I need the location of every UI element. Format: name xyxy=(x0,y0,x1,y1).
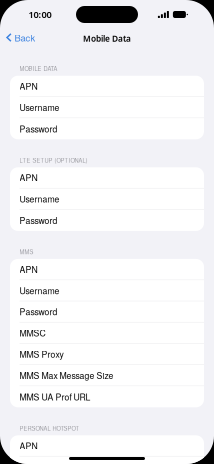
button[interactable]: APN xyxy=(10,259,204,280)
button[interactable]: APN xyxy=(10,435,204,456)
button[interactable]: MMS UA Prof URL xyxy=(10,386,204,407)
staticText: 10:00 xyxy=(28,8,51,21)
button[interactable]: Password xyxy=(10,301,204,322)
staticText: Username xyxy=(19,461,59,464)
staticText: APN xyxy=(19,171,37,184)
staticText: Back xyxy=(14,31,35,44)
staticText: Password xyxy=(19,214,57,226)
staticText: APN xyxy=(19,439,37,452)
staticText: MMSC xyxy=(19,327,45,339)
button[interactable]: Back xyxy=(0,29,35,48)
staticText: Password xyxy=(19,305,57,318)
button[interactable]: APN xyxy=(10,76,204,97)
button[interactable]: MMS Proxy xyxy=(10,344,204,365)
button[interactable]: APN xyxy=(10,167,204,188)
button[interactable]: MMS Max Message Size xyxy=(10,365,204,386)
staticText: LTE SETUP (OPTIONAL) xyxy=(19,156,87,164)
staticText: MMS xyxy=(19,248,33,256)
staticText: Password xyxy=(19,122,57,135)
button[interactable]: Username xyxy=(10,280,204,301)
staticText: Username xyxy=(19,193,59,205)
staticText: MOBILE DATA xyxy=(19,64,57,73)
button[interactable]: MMSC xyxy=(10,322,204,344)
button[interactable]: Username xyxy=(10,188,204,210)
staticText: PERSONAL HOTSPOT xyxy=(19,424,79,432)
button[interactable]: Password xyxy=(10,210,204,231)
staticText: APN xyxy=(19,263,37,275)
staticText: MMS Proxy xyxy=(19,348,63,360)
staticText: APN xyxy=(19,80,37,92)
staticText: Username xyxy=(19,101,59,113)
button[interactable]: Password xyxy=(10,118,204,139)
button[interactable]: Username xyxy=(10,97,204,118)
staticText: MMS Max Message Size xyxy=(19,369,113,381)
staticText: Mobile Data xyxy=(83,33,131,44)
staticText: MMS UA Prof URL xyxy=(19,390,90,403)
button[interactable]: Username xyxy=(10,456,204,464)
staticText: Username xyxy=(19,284,59,297)
